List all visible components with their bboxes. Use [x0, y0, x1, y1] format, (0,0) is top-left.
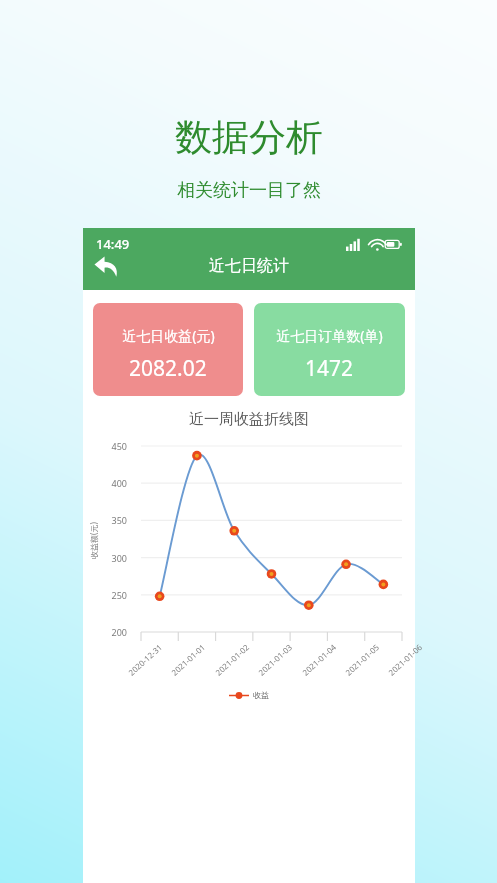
staticText: 2021-01-05 [343, 641, 381, 678]
staticText: 400 [91, 477, 127, 489]
staticText: 收益 [253, 690, 269, 700]
staticText: 14:49 [96, 235, 130, 253]
staticText: 近七日统计 [209, 256, 289, 276]
staticText: 收益额(元) [88, 522, 99, 559]
staticText: 2021-01-03 [256, 641, 294, 678]
button[interactable]: 近七日收益(元) [93, 303, 243, 396]
staticText: 450 [91, 440, 127, 452]
button[interactable]: Back [89, 249, 123, 283]
staticText: 2021-01-01 [169, 641, 207, 678]
staticText: 近七日订单数(单) [276, 326, 383, 345]
staticText: 1472 [305, 354, 354, 383]
button[interactable]: 近七日订单数(单) [254, 303, 405, 396]
staticText: 近一周收益折线图 [189, 410, 309, 429]
staticText: 相关统计一目了然 [177, 179, 321, 202]
staticText: 2082.02 [129, 354, 207, 383]
staticText: 近七日收益(元) [122, 326, 215, 345]
staticText: 250 [91, 589, 127, 601]
staticText: 2020-12-31 [126, 641, 164, 678]
staticText: 200 [91, 626, 127, 638]
staticText: 2021-01-06 [386, 641, 424, 678]
staticText: 数据分析 [175, 114, 323, 161]
staticText: 2021-01-02 [213, 641, 251, 678]
staticText: 2021-01-04 [300, 641, 338, 678]
staticText: 350 [91, 514, 127, 526]
staticText: 300 [91, 552, 127, 564]
